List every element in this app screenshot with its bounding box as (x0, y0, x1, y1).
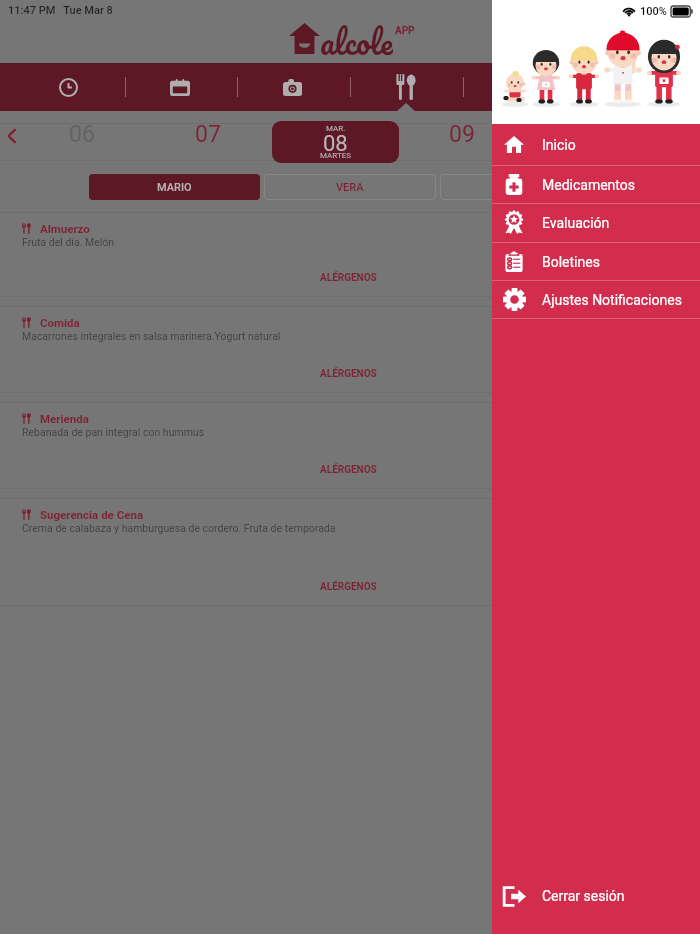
staticText: 11:47 PM Tue Mar 8 (8, 4, 113, 17)
staticText: Almuerzo (40, 222, 90, 235)
staticText: MARTES (320, 151, 351, 160)
staticText: 100% (640, 5, 667, 18)
staticText: MAR. (326, 124, 346, 133)
button[interactable]: ALÉRGENOS (320, 464, 377, 476)
staticText: Evaluación (542, 215, 610, 231)
staticText: 08 (323, 131, 348, 157)
staticText: alcole (320, 15, 393, 57)
staticText: MARIO (157, 181, 192, 194)
staticText: Medicamentos (542, 177, 635, 193)
button[interactable]: 06 (42, 111, 122, 161)
staticText: Crema de calabaza y hamburguesa de corde… (22, 522, 336, 534)
staticText: Cerrar sesión (542, 888, 625, 904)
button[interactable]: Horario (12, 63, 124, 111)
button[interactable]: Boletines (492, 243, 700, 280)
staticText: 09 (449, 121, 475, 148)
button[interactable]: VERA (264, 174, 436, 200)
button[interactable]: Comida (0, 306, 700, 393)
staticText: Boletines (542, 254, 600, 270)
button[interactable]: Perfil (575, 63, 688, 111)
staticText: VERA (336, 181, 364, 194)
button[interactable]: ALÉRGENOS (320, 368, 377, 380)
button[interactable]: Medicamentos (492, 166, 700, 203)
button[interactable]: Mensajes (462, 63, 575, 111)
button[interactable] (440, 174, 620, 200)
button[interactable]: Fotos (236, 63, 349, 111)
staticText: Comida (40, 316, 80, 329)
staticText: Ajustes Notificaciones (542, 292, 682, 308)
button[interactable]: Cerrar sesión (492, 870, 700, 922)
button[interactable]: Evaluación (492, 204, 700, 242)
button[interactable]: Merienda (0, 402, 700, 489)
button[interactable]: ALÉRGENOS (320, 272, 377, 284)
button[interactable]: Agenda (124, 63, 236, 111)
staticText: Merienda (40, 412, 89, 425)
button[interactable]: Sugerencia de Cena (0, 498, 700, 606)
button[interactable]: Previous week (0, 111, 24, 161)
button[interactable]: MAR. (272, 121, 399, 163)
button[interactable]: Almuerzo (0, 212, 700, 297)
button[interactable]: Ajustes Notificaciones (492, 281, 700, 318)
button[interactable]: Inicio (492, 124, 700, 165)
staticText: Rebanada de pan integral con hummus (22, 426, 205, 438)
button[interactable]: MARIO (89, 174, 260, 200)
staticText: 06 (69, 121, 95, 148)
button[interactable]: 09 (422, 111, 502, 161)
staticText: APP (395, 25, 415, 37)
button[interactable]: 07 (168, 111, 248, 161)
staticText: Fruta del día. Melón (22, 236, 115, 248)
staticText: Macarrones integrales en salsa marinera.… (22, 330, 281, 342)
staticText: Inicio (542, 137, 576, 153)
button[interactable]: ALÉRGENOS (320, 581, 377, 593)
staticText: 07 (195, 121, 221, 148)
button[interactable]: Comedor (349, 63, 462, 111)
staticText: Sugerencia de Cena (40, 508, 144, 521)
